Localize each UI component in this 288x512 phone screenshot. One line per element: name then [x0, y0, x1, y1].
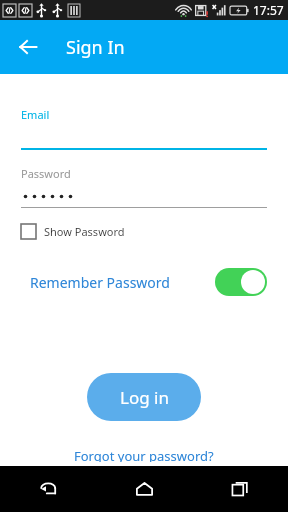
button[interactable]: Recent apps [192, 466, 288, 512]
staticText: Email [21, 107, 50, 122]
staticText: Show Password [44, 224, 125, 239]
staticText: Remember Password [30, 273, 170, 292]
staticText: Log in [120, 386, 169, 409]
button[interactable]: Remember Password [21, 268, 267, 296]
staticText: 17:57 [253, 2, 284, 18]
button[interactable]: Log in [87, 373, 201, 421]
button[interactable]: Back [10, 29, 46, 65]
staticText: Password [21, 166, 71, 181]
button[interactable]: Show Password [21, 220, 125, 243]
button[interactable]: Home [96, 466, 192, 512]
staticText: Sign In [66, 35, 125, 60]
button[interactable]: Forgot your password? [70, 443, 218, 466]
button[interactable]: Back [0, 466, 96, 512]
